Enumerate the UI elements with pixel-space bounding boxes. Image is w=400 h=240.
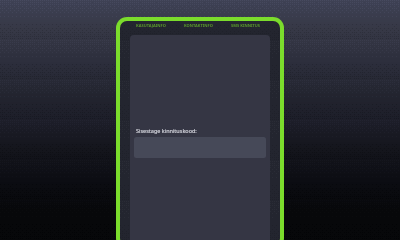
staticText: Sisestage kinnituskood: (136, 127, 197, 134)
button[interactable]: SMS KINNITUS (231, 23, 261, 28)
button[interactable]: KASUTAJAINFO (136, 23, 166, 28)
staticText: KONTAKTINFO (184, 23, 213, 28)
button[interactable]: KONTAKTINFO (184, 23, 213, 28)
staticText: KASUTAJAINFO (136, 23, 166, 28)
staticText: SMS KINNITUS (231, 23, 261, 28)
